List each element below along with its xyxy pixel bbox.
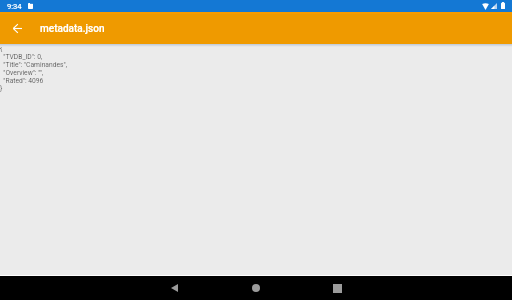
button[interactable]: Home xyxy=(241,276,270,300)
staticText: 9:34 xyxy=(7,2,22,11)
button[interactable]: Recent apps xyxy=(323,276,352,300)
staticText: metadata.json xyxy=(40,23,105,35)
button[interactable]: Back xyxy=(160,276,189,300)
staticText: { "TVDB_ID": 0, "Title": "Caminandes", "… xyxy=(0,45,67,93)
button[interactable]: Navigate up xyxy=(7,18,28,38)
